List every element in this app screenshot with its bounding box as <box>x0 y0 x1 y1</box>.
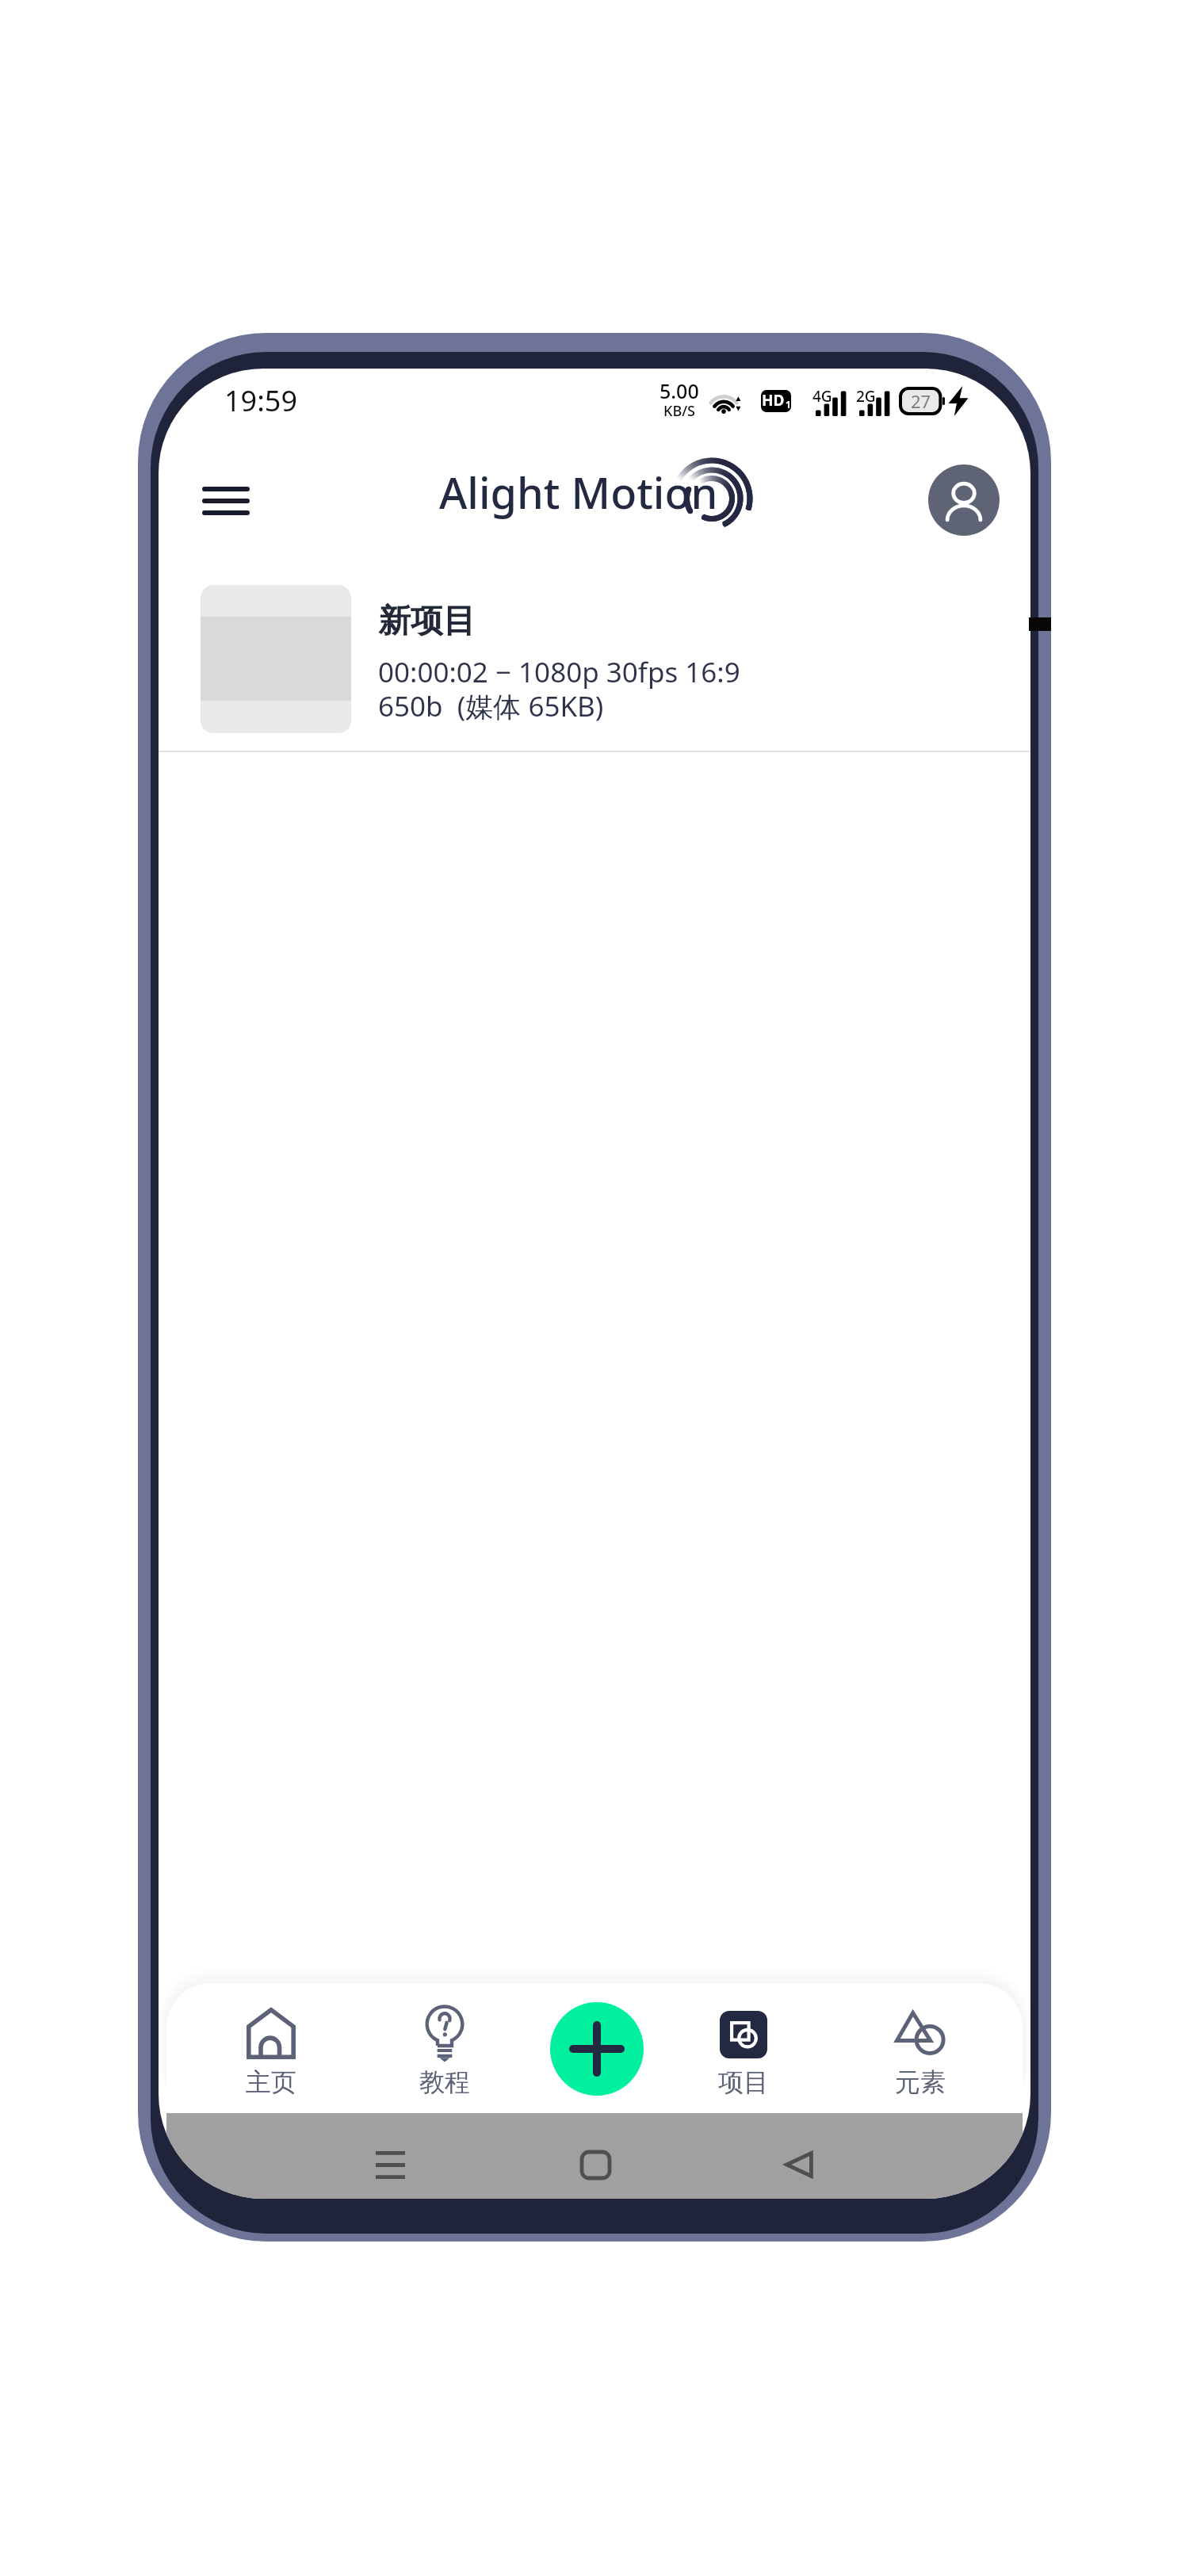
staticText: 新项目 <box>378 601 476 642</box>
staticText: 5.00 <box>659 377 699 404</box>
staticText: 19:59 <box>224 381 298 420</box>
button[interactable]: 项目 <box>680 1983 807 2113</box>
staticText: 650b (媒体 65KB) <box>378 687 604 725</box>
staticText: 项目 <box>718 2066 769 2098</box>
button[interactable]: 教程 <box>381 1983 508 2113</box>
button[interactable]: 新项目 <box>159 555 1030 753</box>
button[interactable]: Menu <box>186 461 265 540</box>
button[interactable]: New project <box>550 2002 644 2096</box>
staticText: 元素 <box>895 2066 946 2098</box>
button[interactable]: Home <box>557 2131 633 2198</box>
button[interactable]: Back <box>761 2131 837 2198</box>
staticText: 00:00:02 − 1080p 30fps 16:9 <box>378 653 740 691</box>
staticText: 1 <box>786 398 791 411</box>
staticText: 主页 <box>246 2066 296 2098</box>
staticText: Alight Motion <box>439 463 718 522</box>
staticText: 27 <box>911 389 931 413</box>
staticText: 2G <box>856 386 876 407</box>
button[interactable]: Recents <box>352 2131 428 2198</box>
button[interactable]: Account <box>928 464 1000 536</box>
staticText: 教程 <box>419 2066 470 2098</box>
staticText: 4G <box>812 386 832 407</box>
staticText: KB/S <box>663 401 695 421</box>
staticText: HD <box>762 390 785 411</box>
button[interactable]: 元素 <box>857 1983 984 2113</box>
button[interactable]: 主页 <box>208 1983 335 2113</box>
